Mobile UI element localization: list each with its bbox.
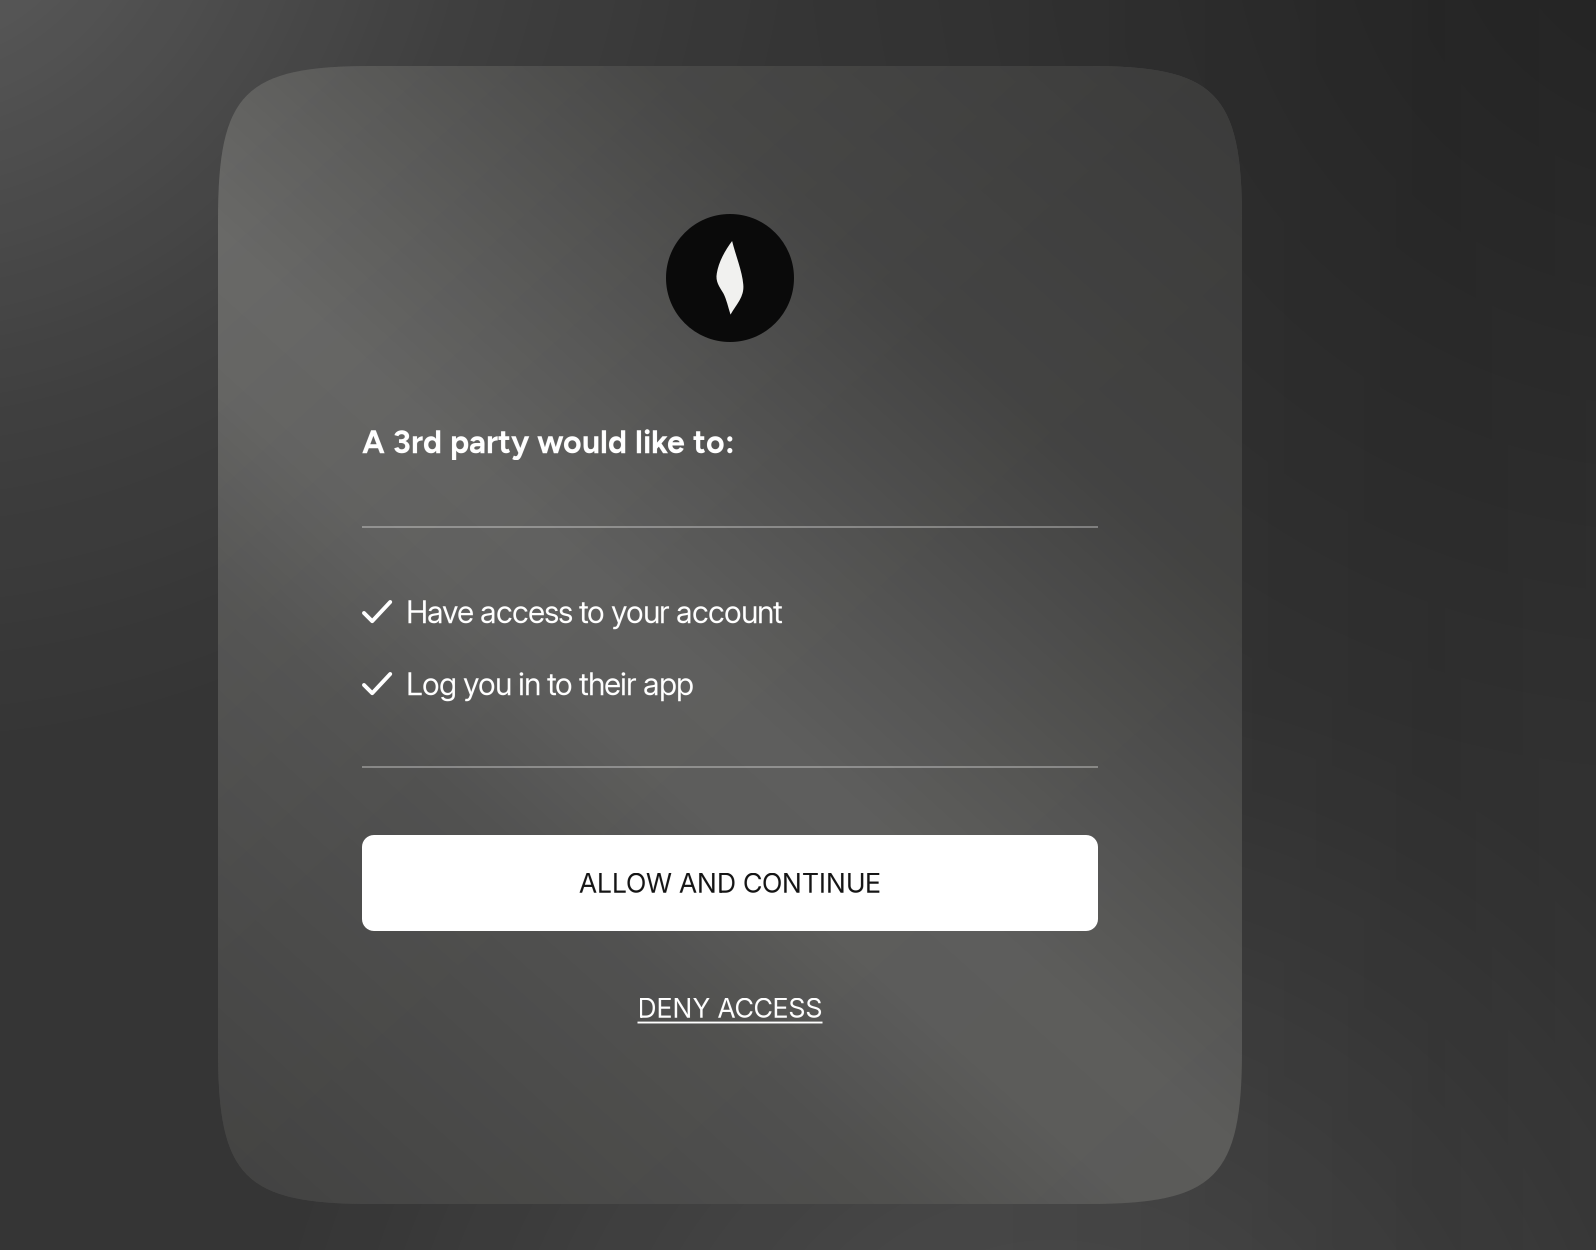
button[interactable]: DENY ACCESS (570, 976, 890, 1040)
staticText: Log you in to their app (406, 665, 694, 702)
button[interactable]: ALLOW AND CONTINUE (362, 835, 1098, 931)
staticText: A 3rd party would like to: (362, 423, 735, 461)
staticText: ALLOW AND CONTINUE (579, 867, 881, 899)
staticText: Have access to your account (406, 593, 783, 630)
staticText: DENY ACCESS (637, 992, 822, 1024)
